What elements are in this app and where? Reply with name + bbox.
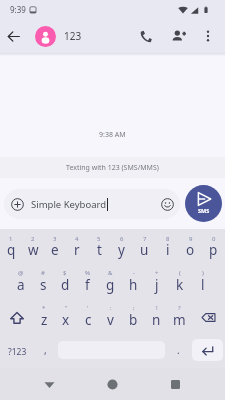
staticText: 9:39 (10, 4, 26, 15)
button[interactable]: # (32, 263, 54, 298)
staticText: c (85, 311, 92, 329)
staticText: r (74, 241, 80, 259)
button[interactable]: Shift (0, 298, 33, 333)
staticText: g (106, 276, 115, 294)
button[interactable]: * (33, 298, 55, 333)
button[interactable]: & (99, 263, 122, 298)
button[interactable]: 8 (156, 229, 179, 263)
staticText: f (85, 276, 90, 294)
staticText: " (65, 304, 68, 312)
staticText: ? (178, 304, 181, 312)
staticText: t (97, 241, 102, 259)
button[interactable]: Back (33, 368, 65, 400)
staticText: . (177, 343, 180, 357)
staticText: + (155, 269, 159, 277)
button[interactable]: 4 (66, 229, 88, 263)
button[interactable]: 1 (0, 229, 22, 263)
staticText: x (62, 311, 70, 329)
button[interactable] (35, 26, 56, 47)
button[interactable]: Enter (192, 339, 223, 361)
staticText: ) (202, 269, 204, 277)
staticText: 8 (166, 235, 170, 243)
staticText: p (209, 241, 218, 259)
staticText: 0 (212, 235, 216, 243)
staticText: n (152, 311, 161, 329)
button[interactable]: 6 (110, 229, 133, 263)
staticText: q (7, 241, 16, 259)
button[interactable]: ! (145, 298, 168, 333)
button[interactable]: 7 (133, 229, 156, 263)
staticText: & (108, 269, 113, 277)
button[interactable]: % (76, 263, 99, 298)
staticText: 1 (9, 235, 13, 243)
button[interactable]: Recent apps (159, 368, 191, 400)
button[interactable]: ?123 (0, 333, 34, 368)
staticText: 9 (189, 235, 193, 243)
button[interactable]: ( (168, 263, 191, 298)
button[interactable]: " (55, 298, 77, 333)
staticText: @ (18, 269, 24, 277)
button[interactable]: Call (130, 21, 160, 51)
staticText: d (61, 276, 70, 294)
staticText: 123 (64, 29, 82, 43)
button[interactable]: Backspace (191, 298, 225, 333)
staticText: : (110, 304, 112, 312)
button[interactable]: 5 (88, 229, 110, 263)
staticText: w (28, 241, 39, 259)
button[interactable]: Send SMS (185, 185, 222, 222)
staticText: Simple Keyboard (31, 198, 107, 211)
staticText: m (173, 311, 186, 329)
staticText: v (107, 311, 114, 329)
staticText: SMS (198, 207, 210, 214)
button[interactable]: , (34, 333, 56, 368)
button[interactable]: Add person (164, 21, 194, 51)
staticText: h (129, 276, 138, 294)
button[interactable]: : (99, 298, 122, 333)
button[interactable]: Back (0, 23, 26, 49)
button[interactable]: @ (10, 263, 32, 298)
staticText: ?123 (8, 346, 27, 358)
button[interactable]: . (167, 333, 189, 368)
button[interactable]: ? (168, 298, 191, 333)
staticText: e (51, 241, 59, 259)
button[interactable]: 2 (22, 229, 44, 263)
button[interactable]: - (122, 263, 145, 298)
staticText: Texting with 123 (SMS/MMS) (66, 163, 159, 173)
staticText: 5 (97, 235, 101, 243)
staticText: 4 (75, 235, 79, 243)
staticText: z (41, 311, 48, 329)
button[interactable]: ' (77, 298, 99, 333)
staticText: # (41, 269, 45, 277)
button[interactable]: 3 (44, 229, 66, 263)
staticText: * (42, 304, 46, 312)
staticText: k (176, 276, 184, 294)
button[interactable]: 9 (179, 229, 202, 263)
staticText: 7 (143, 235, 147, 243)
staticText: ( (179, 269, 181, 277)
staticText: u (140, 241, 149, 259)
staticText: ; (133, 304, 135, 312)
button[interactable]: More options (195, 23, 221, 49)
staticText: ! (156, 304, 158, 312)
button[interactable]: $ (54, 263, 76, 298)
button[interactable]: ) (191, 263, 214, 298)
staticText: y (118, 241, 125, 259)
staticText: j (155, 276, 159, 294)
button[interactable]: Home (96, 368, 128, 400)
button[interactable]: + (145, 263, 168, 298)
staticText: s (40, 276, 47, 294)
staticText: $ (63, 269, 67, 277)
staticText: , (44, 343, 47, 357)
staticText: 3 (53, 235, 57, 243)
staticText: o (186, 241, 195, 259)
staticText: i (166, 241, 170, 259)
button[interactable]: ; (122, 298, 145, 333)
staticText: a (17, 276, 25, 294)
staticText: l (201, 276, 205, 294)
button[interactable]: Simple Keyboard (4, 189, 180, 219)
button[interactable]: 0 (202, 229, 225, 263)
staticText: 6 (120, 235, 124, 243)
staticText: 9:38 AM (99, 130, 126, 140)
staticText: ' (87, 304, 89, 312)
